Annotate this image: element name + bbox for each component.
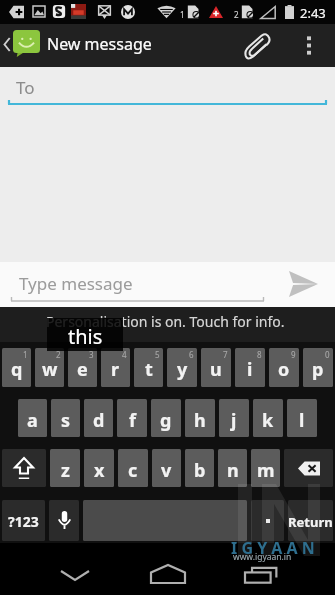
staticText: www.igyaan.in (233, 551, 292, 563)
staticText: 1 (180, 9, 185, 20)
button[interactable]: Navigate up (0, 24, 160, 67)
button[interactable]: l (287, 399, 317, 437)
button[interactable]: Home (132, 553, 204, 595)
staticText: this (68, 323, 103, 350)
staticText: Type message (19, 272, 133, 295)
staticText: w (42, 357, 58, 382)
staticText: New message (47, 33, 152, 55)
staticText: 5 (155, 349, 160, 360)
staticText: i (247, 357, 253, 382)
button[interactable]: Voice input (49, 500, 79, 541)
staticText: q (11, 357, 23, 382)
staticText: a (27, 408, 38, 433)
staticText: c (128, 458, 138, 483)
button[interactable]: k (253, 399, 283, 437)
staticText: e (77, 357, 88, 382)
staticText: x (94, 458, 105, 483)
button[interactable]: Back (39, 553, 111, 595)
button[interactable]: Type message (0, 262, 266, 307)
staticText: g (160, 408, 172, 433)
staticText: l (299, 408, 305, 433)
staticText: 6 (189, 349, 194, 360)
button[interactable]: m (251, 449, 280, 487)
button[interactable]: d (84, 399, 113, 437)
button[interactable]: Recent apps (225, 553, 297, 595)
button[interactable]: Space (83, 500, 247, 541)
staticText: u (210, 357, 222, 382)
button[interactable]: n (218, 449, 247, 487)
button[interactable]: Shift (2, 449, 46, 487)
button[interactable]: More options (293, 24, 325, 67)
staticText: d (93, 408, 105, 433)
button[interactable]: Personalisation is on. Touch for info. (0, 307, 335, 342)
staticText: Personalisation is on. Touch for info. (46, 312, 285, 331)
button[interactable]: s (51, 399, 80, 437)
button[interactable]: g (151, 399, 181, 437)
staticText: 9 (291, 349, 296, 360)
staticText: I G Y A A N (231, 537, 315, 559)
button[interactable]: Return (288, 500, 333, 541)
staticText: o (278, 357, 290, 382)
button[interactable]: a (18, 399, 47, 437)
staticText: m (257, 458, 275, 483)
button[interactable]: Send (266, 262, 335, 307)
button[interactable]: Period (251, 500, 284, 541)
button[interactable]: Attach (248, 24, 293, 67)
button[interactable]: p (303, 348, 333, 387)
button[interactable]: this (47, 318, 123, 351)
staticText: v (161, 458, 172, 483)
staticText: j (231, 408, 237, 433)
button[interactable]: j (219, 399, 249, 437)
button[interactable]: i (235, 348, 265, 387)
button[interactable]: u (201, 348, 231, 387)
button[interactable]: f (117, 399, 147, 437)
button[interactable]: w (35, 348, 64, 387)
staticText: 1 (23, 349, 28, 360)
staticText: f (129, 408, 136, 433)
staticText: b (194, 458, 206, 483)
staticText: 2 (56, 349, 61, 360)
button[interactable]: Backspace (284, 449, 333, 487)
staticText: y (177, 357, 188, 382)
button[interactable]: o (269, 348, 299, 387)
staticText: r (111, 357, 120, 382)
staticText: k (262, 408, 274, 433)
button[interactable]: To (0, 67, 335, 110)
staticText: 7 (223, 349, 228, 360)
staticText: 8 (257, 349, 262, 360)
button[interactable]: y (167, 348, 197, 387)
button[interactable]: c (118, 449, 148, 487)
staticText: ?123 (8, 512, 39, 531)
staticText: Return (288, 513, 333, 531)
button[interactable]: t (134, 348, 163, 387)
button[interactable]: e (68, 348, 97, 387)
staticText: p (312, 357, 324, 382)
staticText: 2 (234, 9, 239, 20)
staticText: To (16, 76, 35, 99)
staticText: 2:43 (300, 4, 326, 22)
button[interactable]: v (152, 449, 181, 487)
staticText: 4 (122, 349, 127, 360)
staticText: 3 (89, 349, 94, 360)
button[interactable]: r (101, 348, 130, 387)
staticText: n (227, 458, 239, 483)
button[interactable]: q (2, 348, 31, 387)
staticText: 0 (325, 349, 330, 360)
button[interactable]: x (84, 449, 114, 487)
staticText: s (61, 408, 71, 433)
staticText: h (194, 408, 206, 433)
staticText: t (145, 357, 153, 382)
button[interactable]: Symbols (2, 500, 45, 541)
staticText: z (61, 458, 70, 483)
button[interactable]: z (50, 449, 80, 487)
button[interactable]: b (185, 449, 214, 487)
button[interactable]: h (185, 399, 215, 437)
